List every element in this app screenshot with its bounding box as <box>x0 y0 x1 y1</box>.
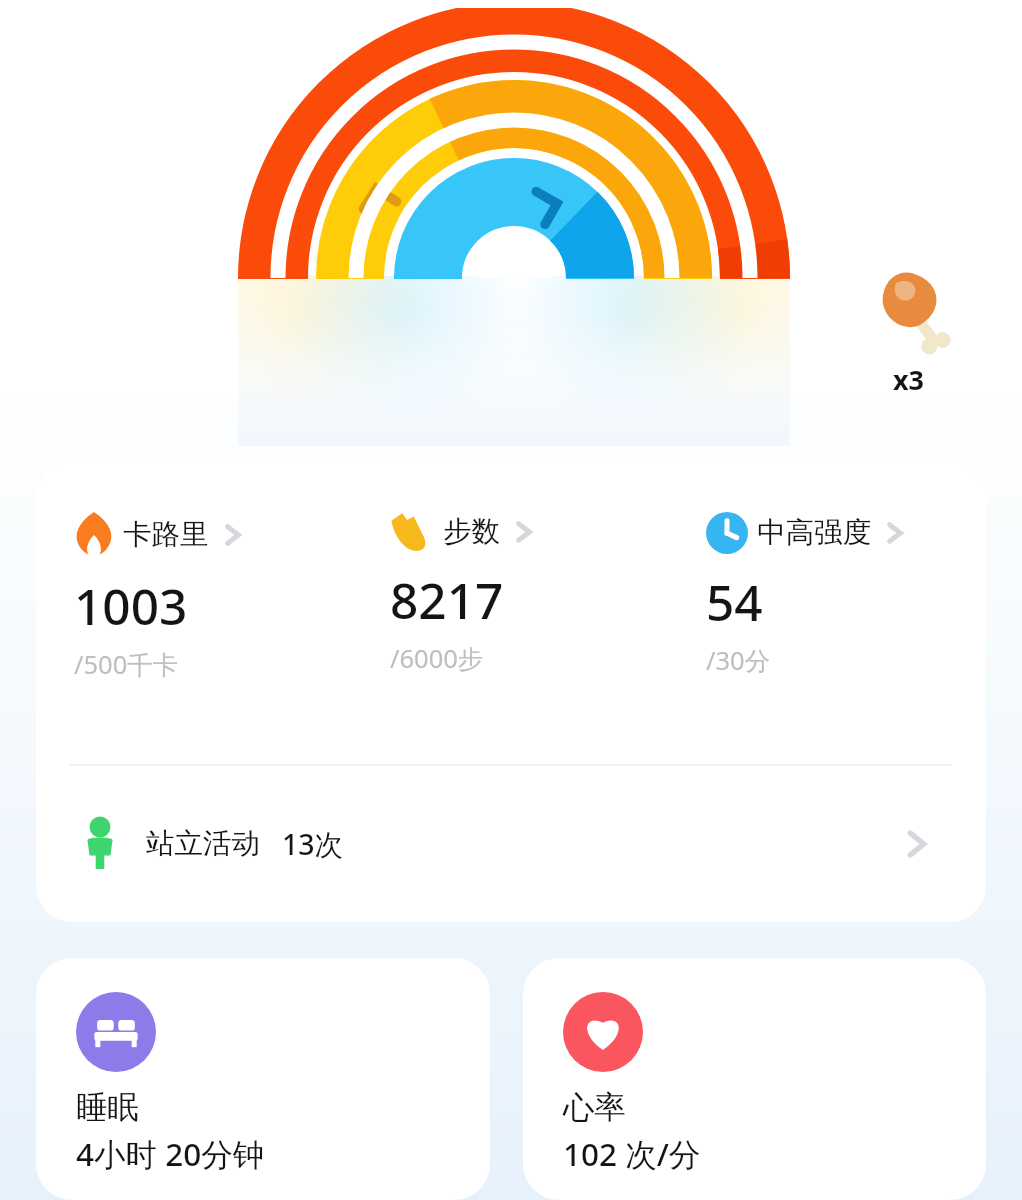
staticText: x3 <box>893 361 925 398</box>
staticText: 54 <box>706 568 763 635</box>
staticText: 102 次/分 <box>563 1132 701 1175</box>
button[interactable]: 中高强度 <box>706 512 956 678</box>
staticText: 8217 <box>390 566 504 633</box>
button[interactable]: 步数 <box>390 512 706 676</box>
staticText: /6000步 <box>390 641 484 676</box>
staticText: 睡眠 <box>76 1088 139 1128</box>
staticText: 步数 <box>443 514 500 550</box>
staticText: /30分 <box>706 643 771 678</box>
button[interactable]: Reward chicken leg times 3 <box>831 249 986 434</box>
button[interactable]: Heart rate <box>523 958 986 1200</box>
button[interactable]: Sleep <box>36 958 490 1200</box>
staticText: /500千卡 <box>74 647 179 682</box>
staticText: 4小时 20分钟 <box>76 1132 265 1175</box>
staticText: 卡路里 <box>123 517 209 553</box>
staticText: 13次 <box>282 825 344 864</box>
staticText: 1003 <box>74 572 188 639</box>
button[interactable]: 站立活动 <box>36 766 986 922</box>
staticText: 心率 <box>563 1088 626 1128</box>
staticText: 中高强度 <box>757 515 871 551</box>
staticText: 站立活动 <box>146 826 260 862</box>
button[interactable]: 卡路里 <box>74 512 390 682</box>
